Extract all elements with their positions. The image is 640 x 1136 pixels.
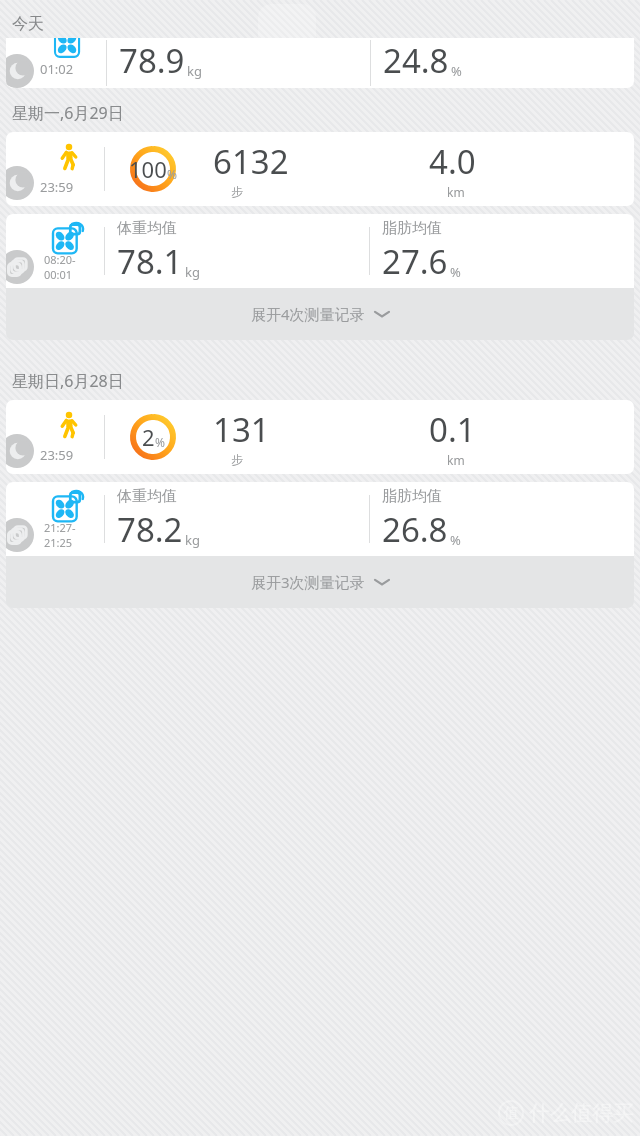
- staticText: %: [450, 531, 461, 549]
- staticText: kg: [185, 531, 200, 549]
- staticText: 00:01: [44, 267, 73, 282]
- staticText: 4.0: [429, 139, 476, 184]
- button[interactable]: 21:27-: [6, 482, 634, 556]
- staticText: 今天: [12, 14, 44, 34]
- staticText: 什么值得买: [529, 1100, 634, 1126]
- staticText: kg: [187, 62, 202, 80]
- staticText: 星期一,6月29日: [12, 102, 124, 124]
- staticText: 展开3次测量记录: [251, 572, 365, 592]
- staticText: 步: [231, 184, 243, 199]
- staticText: 2: [142, 422, 155, 452]
- staticText: 78.2: [117, 507, 183, 552]
- staticText: 78.1: [117, 239, 183, 284]
- staticText: 脂肪均值: [382, 487, 442, 506]
- button[interactable]: 展开3次测量记录: [6, 556, 634, 608]
- staticText: 78.9: [119, 38, 185, 83]
- staticText: 0.1: [429, 407, 476, 452]
- button[interactable]: 展开4次测量记录: [6, 288, 634, 340]
- staticText: 体重均值: [117, 219, 177, 238]
- other: Grouped records: [6, 518, 34, 552]
- staticText: km: [447, 452, 465, 468]
- other: Night record: [6, 54, 34, 88]
- staticText: 21:27-: [44, 520, 76, 535]
- other: Night record: [6, 166, 34, 200]
- staticText: 6132: [213, 139, 289, 184]
- staticText: 星期日,6月28日: [12, 370, 124, 392]
- staticText: %: [451, 62, 462, 80]
- staticText: 24.8: [383, 38, 449, 83]
- staticText: 08:20-: [44, 252, 76, 267]
- staticText: %: [155, 434, 165, 450]
- staticText: kg: [185, 263, 200, 281]
- staticText: %: [167, 166, 177, 182]
- staticText: 26.8: [382, 507, 448, 552]
- staticText: 01:02: [40, 60, 74, 78]
- button[interactable]: 23:59: [6, 132, 634, 206]
- staticText: 100: [129, 154, 167, 184]
- button[interactable]: 01:02: [6, 38, 634, 88]
- other: Grouped records: [6, 250, 34, 284]
- button[interactable]: 23:59: [6, 400, 634, 474]
- staticText: km: [447, 184, 465, 200]
- staticText: %: [450, 263, 461, 281]
- staticText: 步: [231, 452, 243, 467]
- staticText: 23:59: [40, 178, 74, 196]
- staticText: 展开4次测量记录: [251, 304, 365, 324]
- button[interactable]: 08:20-: [6, 214, 634, 288]
- staticText: 值: [504, 1104, 519, 1123]
- other: Night record: [6, 434, 34, 468]
- staticText: 27.6: [382, 239, 448, 284]
- staticText: 体重均值: [117, 487, 177, 506]
- staticText: 21:25: [44, 535, 73, 550]
- staticText: 脂肪均值: [382, 219, 442, 238]
- staticText: 131: [213, 407, 270, 452]
- staticText: 23:59: [40, 446, 74, 464]
